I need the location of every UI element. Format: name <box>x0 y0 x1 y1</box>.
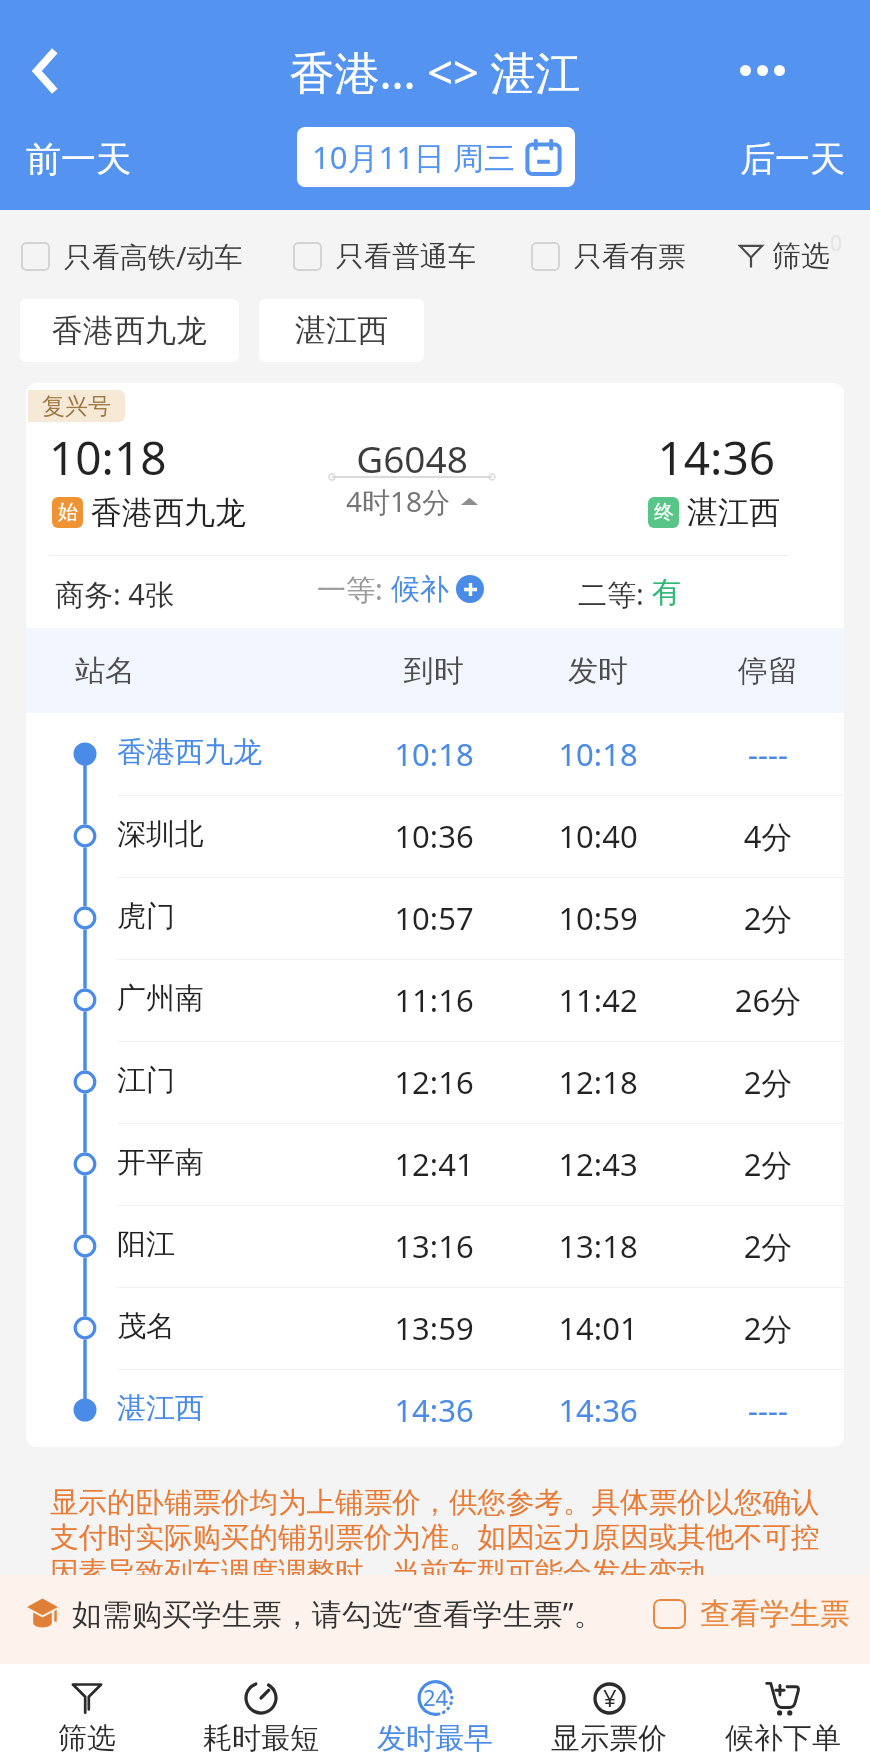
staticText: 发时最早 <box>348 1720 522 1757</box>
button[interactable]: 香港西九龙 <box>20 299 239 362</box>
staticText: 只看高铁/动车 <box>64 237 243 275</box>
staticText: 14:36 <box>545 426 775 489</box>
staticText: 10月11日 周三 <box>312 136 515 178</box>
staticText: ---- <box>688 733 844 775</box>
staticText: G6048 <box>280 433 544 483</box>
staticText: 显示票价 <box>522 1720 696 1757</box>
staticText: 12:16 <box>354 1061 514 1103</box>
staticText: 14:36 <box>518 1389 678 1431</box>
staticText: 始 <box>58 500 78 525</box>
button[interactable]: 筛选 <box>0 1664 174 1764</box>
staticText: 2分 <box>688 1225 844 1267</box>
button[interactable]: More options <box>726 34 798 106</box>
staticText: 12:41 <box>354 1143 514 1185</box>
staticText: 只看普通车 <box>336 239 476 274</box>
staticText: ¥ <box>603 1681 617 1714</box>
staticText: 香港西九龙 <box>52 311 207 350</box>
staticText: 候补 <box>391 571 449 608</box>
staticText: 13:59 <box>354 1307 514 1349</box>
staticText: 14:36 <box>354 1389 514 1431</box>
staticText: 香港西九龙 <box>91 493 246 532</box>
staticText: 10:18 <box>518 733 678 775</box>
button[interactable]: 湛江西 <box>259 299 424 362</box>
staticText: 停留 <box>688 652 844 690</box>
staticText: ---- <box>688 1389 844 1431</box>
staticText: 复兴号 <box>42 392 111 421</box>
staticText: 13:18 <box>518 1225 678 1267</box>
button[interactable]: Add to waitlist <box>456 575 484 603</box>
staticText: 4分 <box>688 815 844 857</box>
staticText: 4时18分 <box>346 482 451 520</box>
staticText: 湛江西 <box>687 493 780 532</box>
staticText: 2分 <box>688 1061 844 1103</box>
staticText: 查看学生票 <box>700 1595 850 1633</box>
staticText: 阳江 <box>117 1226 175 1263</box>
staticText: 24 <box>423 1682 449 1712</box>
staticText: 一等: <box>317 569 391 609</box>
staticText: 显示的卧铺票价均为上铺票价，供您参考。具体票价以您确认 支付时实际购买的铺别票价… <box>50 1485 850 1591</box>
button[interactable]: 10月11日 周三 <box>297 127 575 187</box>
staticText: 广州南 <box>117 980 204 1017</box>
button[interactable]: 后一天 <box>715 120 870 198</box>
staticText: 香港... <> 湛江 <box>0 41 870 102</box>
staticText: 筛选 <box>0 1720 174 1757</box>
staticText: 前一天 <box>26 137 131 181</box>
staticText: 0 <box>830 229 843 258</box>
staticText: 虎门 <box>117 898 175 935</box>
button[interactable]: 候补下单 <box>696 1664 870 1764</box>
staticText: 11:16 <box>354 979 514 1021</box>
staticText: 如需购买学生票，请勾选“查看学生票”。 <box>72 1593 604 1634</box>
staticText: 10:57 <box>354 897 514 939</box>
staticText: 2分 <box>688 1143 844 1185</box>
staticText: 到时 <box>354 652 514 690</box>
staticText: 13:16 <box>354 1225 514 1267</box>
staticText: 站名 <box>75 652 135 690</box>
staticText: 开平南 <box>117 1144 204 1181</box>
button[interactable]: 耗时最短 <box>174 1664 348 1764</box>
staticText: 候补下单 <box>696 1720 870 1757</box>
staticText: 后一天 <box>740 137 845 181</box>
staticText: 二等: <box>578 574 652 614</box>
staticText: 10:59 <box>518 897 678 939</box>
staticText: 2分 <box>688 1307 844 1349</box>
staticText: 只看有票 <box>574 239 686 274</box>
button[interactable]: Back <box>10 35 82 107</box>
staticText: 香港西九龙 <box>117 734 262 771</box>
staticText: 有 <box>652 574 681 611</box>
staticText: 26分 <box>688 979 844 1021</box>
staticText: 10:18 <box>49 426 167 489</box>
staticText: 12:18 <box>518 1061 678 1103</box>
staticText: 湛江西 <box>117 1390 204 1427</box>
staticText: 12:43 <box>518 1143 678 1185</box>
staticText: 10:18 <box>354 733 514 775</box>
button[interactable]: 只看有票 <box>531 228 686 284</box>
button[interactable]: 只看高铁/动车 <box>21 228 243 284</box>
staticText: 2分 <box>688 897 844 939</box>
button[interactable]: 前一天 <box>0 120 156 198</box>
staticText: 10:36 <box>354 815 514 857</box>
button[interactable]: 只看普通车 <box>293 228 476 284</box>
button[interactable]: 筛选 <box>739 228 843 284</box>
staticText: 发时 <box>518 652 678 690</box>
staticText: 耗时最短 <box>174 1720 348 1757</box>
staticText: 商务: 4张 <box>55 574 174 614</box>
staticText: 终 <box>654 500 674 525</box>
button[interactable]: ¥ <box>522 1664 696 1764</box>
staticText: 14:01 <box>518 1307 678 1349</box>
button[interactable]: 24 <box>348 1664 522 1764</box>
staticText: 江门 <box>117 1062 175 1099</box>
staticText: 11:42 <box>518 979 678 1021</box>
staticText: 筛选 <box>772 238 830 275</box>
staticText: 深圳北 <box>117 816 204 853</box>
staticText: 湛江西 <box>295 311 388 350</box>
staticText: 茂名 <box>117 1308 175 1345</box>
button[interactable]: 查看学生票 <box>653 1569 870 1658</box>
staticText: 10:40 <box>518 815 678 857</box>
